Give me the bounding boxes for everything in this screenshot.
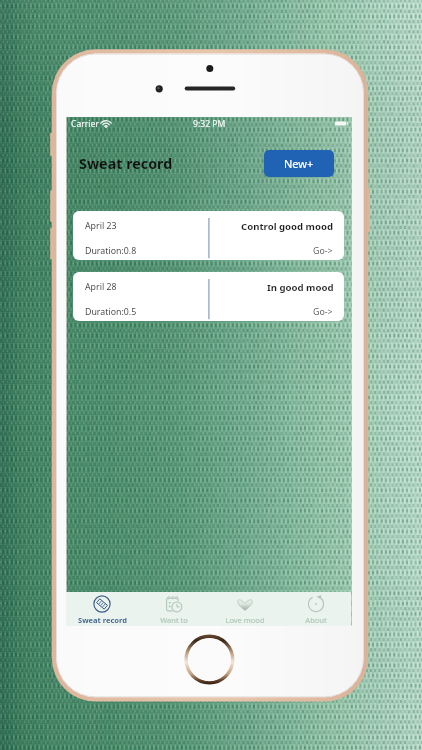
staticText: About: [305, 615, 327, 625]
staticText: In good mood: [267, 281, 334, 294]
button[interactable]: Want to: [138, 592, 209, 626]
staticText: 9:32 PM: [193, 118, 226, 130]
staticText: April 28: [85, 281, 117, 293]
staticText: April 23: [85, 220, 117, 232]
button[interactable]: Love mood: [209, 592, 280, 626]
button[interactable]: April 23: [73, 211, 344, 260]
button[interactable]: Sweat record: [66, 592, 138, 626]
staticText: Want to: [160, 615, 188, 625]
staticText: Sweat record: [78, 615, 127, 625]
button[interactable]: New+: [264, 150, 334, 177]
button[interactable]: About: [280, 592, 351, 626]
staticText: Sweat record: [79, 154, 173, 172]
button[interactable]: April 28: [73, 272, 344, 321]
staticText: Go->: [313, 306, 333, 318]
staticText: Carrier: [71, 118, 99, 130]
staticText: New+: [284, 156, 314, 171]
staticText: Love mood: [225, 615, 265, 625]
staticText: Go->: [313, 245, 333, 257]
staticText: Duration:0.5: [85, 306, 137, 318]
staticText: Control good mood: [241, 220, 334, 233]
staticText: Duration:0.8: [85, 245, 137, 257]
